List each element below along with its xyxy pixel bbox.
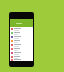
button[interactable] [10,31,33,35]
button[interactable] [10,59,33,61]
button[interactable] [10,55,33,59]
button[interactable] [10,43,33,47]
button[interactable] [10,39,33,43]
button[interactable] [10,47,33,51]
button[interactable] [10,51,33,55]
button[interactable] [10,19,33,27]
button[interactable] [10,35,33,39]
button[interactable] [10,27,33,31]
